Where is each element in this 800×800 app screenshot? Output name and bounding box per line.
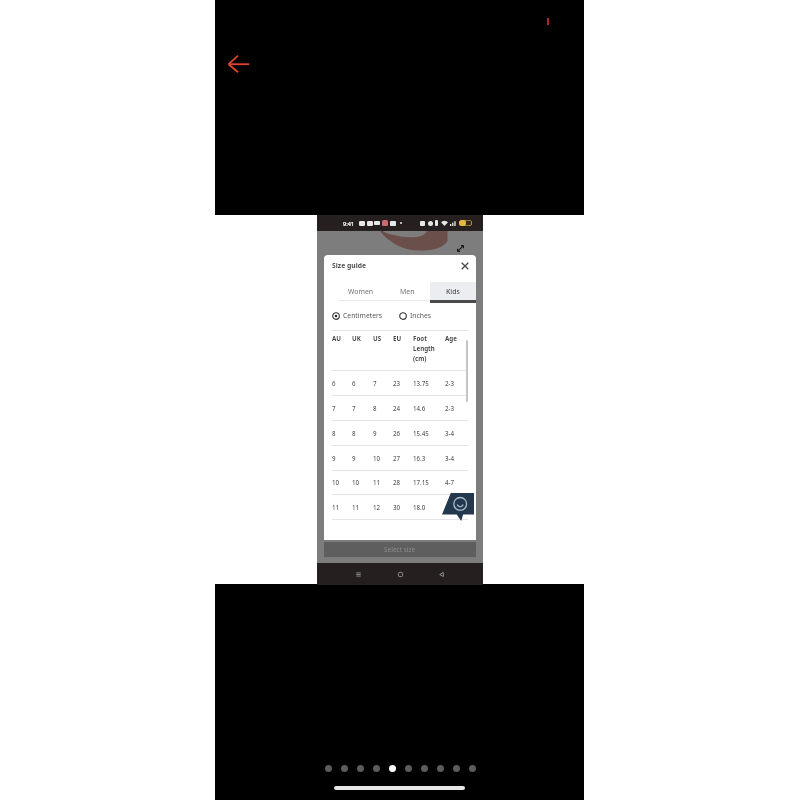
staticText: 15.45 — [413, 429, 429, 437]
staticText: 17.15 — [413, 478, 429, 486]
button[interactable]: Options — [541, 11, 561, 31]
staticText: 12 — [373, 503, 381, 511]
staticText: 14.6 — [413, 404, 426, 412]
staticText: 9 — [373, 429, 377, 437]
staticText: 3-4 — [445, 429, 455, 437]
staticText: Kids — [446, 287, 460, 296]
staticText: 11 — [373, 478, 381, 486]
button[interactable]: Page 3 — [357, 765, 364, 772]
staticText: 7 — [373, 379, 377, 387]
staticText: AU — [332, 334, 341, 342]
staticText: EU — [393, 334, 402, 342]
button[interactable]: Expand image — [456, 244, 465, 253]
button[interactable]: Inches — [399, 311, 432, 320]
staticText: Inches — [410, 311, 432, 320]
button[interactable]: Back — [227, 52, 251, 76]
staticText: 9 — [352, 454, 356, 462]
staticText: 27 — [393, 454, 401, 462]
button[interactable]: Close — [457, 258, 473, 274]
staticText: 10 — [352, 478, 360, 486]
button[interactable]: Select size — [324, 542, 476, 557]
staticText: 8 — [373, 404, 377, 412]
staticText: Centimeters — [343, 311, 383, 320]
staticText: 13.75 — [413, 379, 429, 387]
button[interactable]: Page 8 — [437, 765, 444, 772]
staticText: US — [373, 334, 382, 342]
staticText: 9 — [332, 454, 336, 462]
button[interactable]: Page 10 — [469, 765, 476, 772]
button[interactable]: Recents — [354, 570, 363, 579]
button[interactable]: Page 4 — [373, 765, 380, 772]
staticText: Age — [445, 334, 457, 342]
staticText: UK — [352, 334, 361, 342]
staticText: 3-4 — [445, 454, 455, 462]
staticText: 18.0 — [413, 503, 426, 511]
staticText: 16.3 — [413, 454, 426, 462]
button[interactable]: Page 2 — [341, 765, 348, 772]
staticText: Select size — [384, 545, 416, 554]
button[interactable]: Home — [396, 570, 405, 579]
staticText: 11 — [332, 503, 340, 511]
staticText: Size guide — [332, 261, 367, 270]
staticText: 24 — [393, 404, 401, 412]
staticText: 10 — [373, 454, 381, 462]
button[interactable]: Centimeters — [332, 311, 383, 320]
button[interactable]: Page 1 — [325, 765, 332, 772]
staticText: 4-7 — [445, 503, 455, 511]
staticText: 7 — [332, 404, 336, 412]
staticText: 6 — [352, 379, 356, 387]
staticText: 9:41 — [343, 220, 354, 227]
button[interactable]: Page 9 — [453, 765, 460, 772]
button[interactable]: Back — [437, 570, 446, 579]
staticText: 30 — [393, 503, 401, 511]
staticText: 8 — [352, 429, 356, 437]
staticText: Women — [348, 287, 374, 296]
staticText: 10 — [332, 478, 340, 486]
staticText: 6 — [332, 379, 336, 387]
staticText: 23 — [393, 379, 401, 387]
button[interactable]: Women — [338, 282, 384, 300]
staticText: 2-3 — [445, 379, 455, 387]
staticText: 11 — [352, 503, 360, 511]
staticText: 8 — [332, 429, 336, 437]
button[interactable]: Men — [384, 282, 430, 300]
staticText: 4-7 — [445, 478, 455, 486]
button[interactable]: Kids — [430, 282, 476, 300]
staticText: 28 — [393, 478, 401, 486]
button[interactable]: Page 5 — [389, 765, 396, 772]
button[interactable]: Page 6 — [405, 765, 412, 772]
staticText: 26 — [393, 429, 401, 437]
button[interactable]: Chat support — [442, 493, 474, 521]
staticText: Foot Length (cm) — [413, 334, 435, 363]
button[interactable]: Page 7 — [421, 765, 428, 772]
staticText: 2-3 — [445, 404, 455, 412]
staticText: Men — [400, 287, 415, 296]
staticText: 7 — [352, 404, 356, 412]
